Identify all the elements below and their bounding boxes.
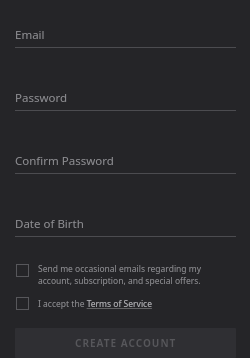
button[interactable]: Date of Birth <box>15 216 236 237</box>
staticText: I accept the Terms of Service <box>38 298 152 310</box>
staticText: Password <box>15 90 68 106</box>
staticText: Email <box>15 27 45 43</box>
button[interactable]: Send me occasional emails regarding my a… <box>15 263 236 287</box>
staticText: Date of Birth <box>15 216 84 232</box>
staticText: Send me occasional emails regarding my a… <box>38 263 236 287</box>
button[interactable]: Password <box>15 90 236 111</box>
button[interactable]: Email <box>15 27 236 48</box>
button[interactable]: I accept the Terms of Service <box>15 297 236 310</box>
button[interactable]: Confirm Password <box>15 153 236 174</box>
staticText: CREATE ACCOUNT <box>75 336 177 350</box>
staticText: Confirm Password <box>15 153 114 169</box>
button[interactable]: CREATE ACCOUNT <box>15 328 236 358</box>
